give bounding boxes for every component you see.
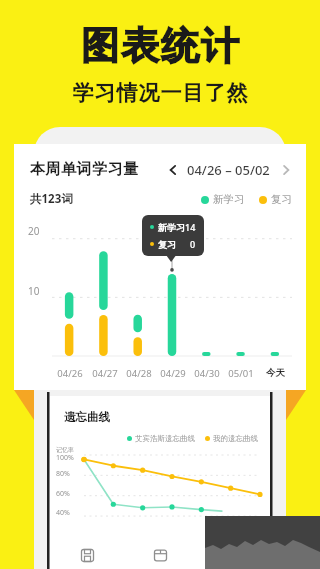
staticText: 14 xyxy=(185,221,196,233)
staticText: 记忆率 xyxy=(56,446,74,454)
button[interactable]: 复习 xyxy=(259,193,292,206)
button[interactable]: Next week xyxy=(278,162,294,178)
staticText: 共123词 xyxy=(30,191,73,207)
staticText: 图表统计 xyxy=(80,22,240,70)
button[interactable]: 我的遗忘曲线 xyxy=(205,434,258,443)
staticText: 100% xyxy=(56,453,74,463)
staticText: 05/01 xyxy=(228,367,254,380)
staticText: 04/26 – 05/02 xyxy=(187,161,270,179)
staticText: 新学习 xyxy=(158,222,185,233)
staticText: 60% xyxy=(56,489,70,499)
staticText: 04/30 xyxy=(194,367,220,380)
staticText: 我的遗忘曲线 xyxy=(213,434,258,443)
button[interactable]: 新学习 xyxy=(150,221,196,250)
button[interactable]: Previous week xyxy=(165,162,181,178)
staticText: 复习 xyxy=(271,193,292,206)
staticText: 80% xyxy=(56,469,70,479)
staticText: 04/28 xyxy=(126,367,152,380)
staticText: 学习情况一目了然 xyxy=(72,80,248,106)
staticText: 0 xyxy=(190,238,196,250)
staticText: 新学习 xyxy=(213,193,245,206)
staticText: 本周单词学习量 xyxy=(30,160,139,179)
button[interactable]: Statistics xyxy=(197,542,270,569)
button[interactable]: Word book xyxy=(50,542,124,569)
button[interactable]: 艾宾浩斯遗忘曲线 xyxy=(127,434,195,443)
staticText: 10 xyxy=(28,284,40,298)
staticText: 40% xyxy=(56,508,70,518)
button[interactable]: Review xyxy=(124,542,197,569)
staticText: 20 xyxy=(28,224,40,238)
staticText: 复习 xyxy=(158,239,176,250)
staticText: 04/26 xyxy=(57,367,83,380)
staticText: 04/29 xyxy=(160,367,186,380)
button[interactable]: 新学习 xyxy=(201,193,245,206)
staticText: 04/27 xyxy=(92,367,118,380)
staticText: 遗忘曲线 xyxy=(64,410,110,424)
staticText: 艾宾浩斯遗忘曲线 xyxy=(135,434,195,443)
staticText: 今天 xyxy=(266,367,285,379)
